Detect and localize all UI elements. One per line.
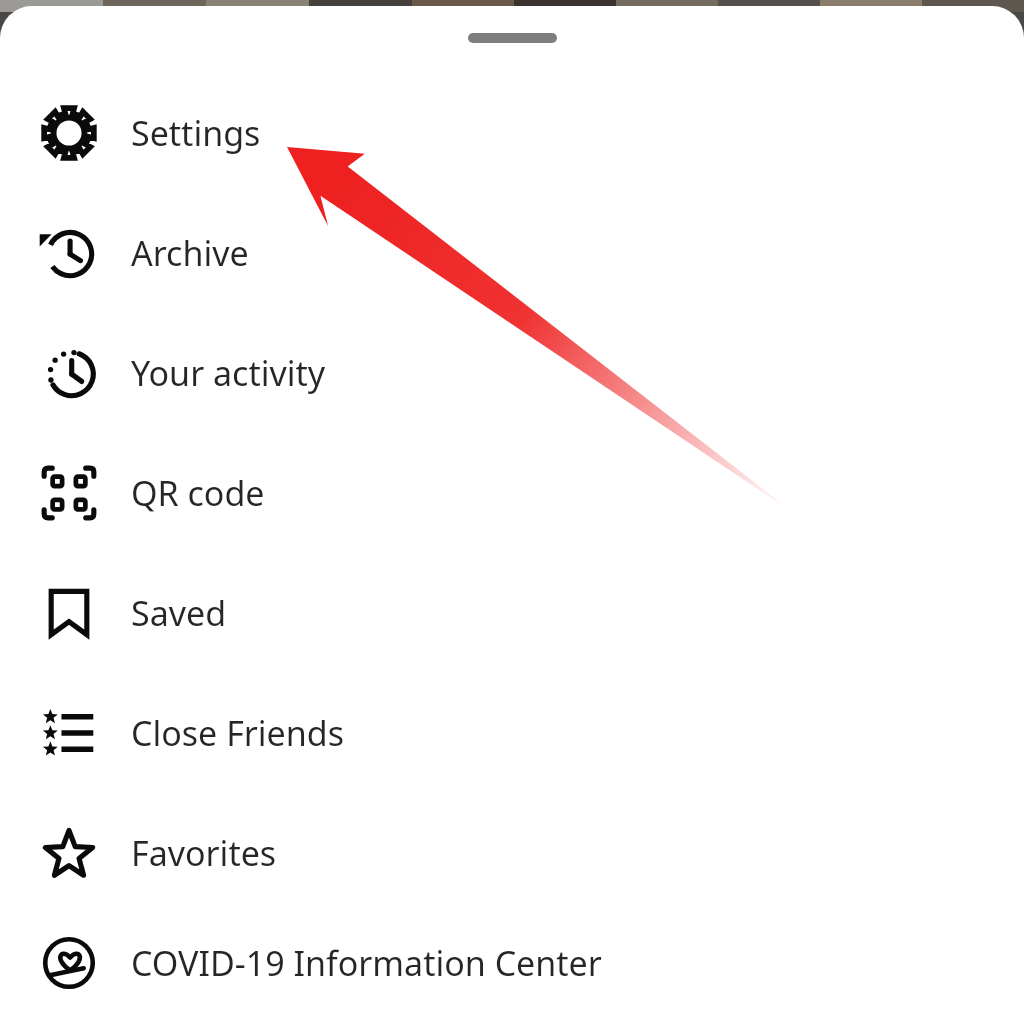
button[interactable]: COVID-19 Information Center xyxy=(0,913,1024,1012)
staticText: QR code xyxy=(131,470,265,516)
staticText: Archive xyxy=(131,230,249,276)
staticText: Settings xyxy=(131,110,261,156)
staticText: Your activity xyxy=(131,350,326,396)
button[interactable]: Your activity xyxy=(0,313,1024,433)
button[interactable]: Close Friends xyxy=(0,673,1024,793)
staticText: Saved xyxy=(131,590,227,636)
button[interactable]: QR code xyxy=(0,433,1024,553)
button[interactable]: Settings xyxy=(0,73,1024,193)
staticText: Favorites xyxy=(131,830,277,876)
button[interactable]: Archive xyxy=(0,193,1024,313)
staticText: COVID-19 Information Center xyxy=(131,940,602,986)
button[interactable]: Saved xyxy=(0,553,1024,673)
button[interactable]: Favorites xyxy=(0,793,1024,913)
staticText: Close Friends xyxy=(131,710,344,756)
